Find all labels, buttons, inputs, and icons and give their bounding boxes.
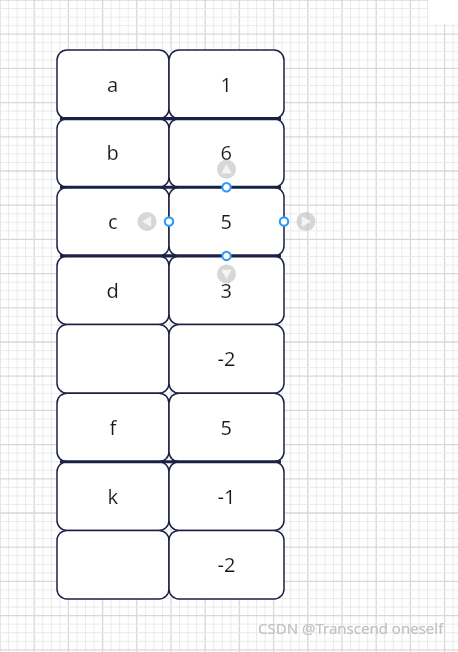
button[interactable]: Cell A3 <box>57 187 169 256</box>
button[interactable]: Cell B2 <box>169 119 284 188</box>
button[interactable]: Cell B6 <box>169 393 284 462</box>
button[interactable]: Cell A1 <box>57 50 169 119</box>
button[interactable]: Cell B8 <box>169 530 284 599</box>
button[interactable]: Cell A8 <box>57 530 169 599</box>
button[interactable]: Cell B7 <box>169 462 284 531</box>
button[interactable]: Cell B3 <box>169 187 284 256</box>
button[interactable]: Insert row below <box>216 263 238 285</box>
button[interactable]: Insert column left <box>136 211 158 233</box>
button[interactable]: Cell B5 <box>169 325 284 394</box>
button[interactable]: Cell A5 <box>57 325 169 394</box>
button[interactable]: Insert row above <box>216 158 238 180</box>
button[interactable]: Cell B4 <box>169 256 284 325</box>
button[interactable]: Cell A6 <box>57 393 169 462</box>
button[interactable]: Cell A2 <box>57 119 169 188</box>
button[interactable]: Cell A7 <box>57 462 169 531</box>
button[interactable]: Cell A4 <box>57 256 169 325</box>
button[interactable]: Cell B1 <box>169 50 284 119</box>
button[interactable]: Insert column right <box>295 211 317 233</box>
